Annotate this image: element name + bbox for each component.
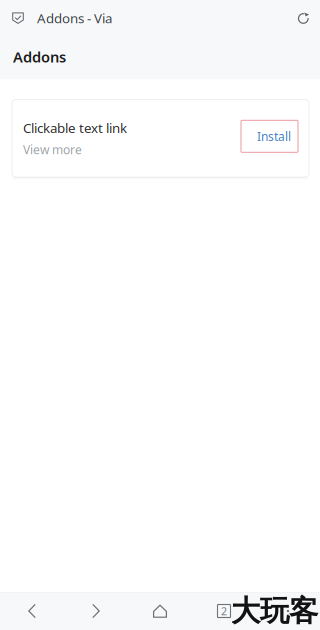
- button[interactable]: Reload: [285, 3, 320, 33]
- staticText: Addons: [13, 47, 66, 66]
- staticText: 大玩客: [231, 593, 318, 629]
- button[interactable]: Home: [128, 592, 192, 630]
- button[interactable]: Back: [0, 592, 64, 630]
- button[interactable]: Forward: [64, 592, 128, 630]
- staticText: Addons - Via: [37, 9, 112, 27]
- staticText: 2: [221, 604, 227, 618]
- button[interactable]: Install: [241, 120, 298, 156]
- staticText: Clickable text link: [23, 119, 127, 137]
- staticText: View more: [23, 142, 82, 158]
- staticText: Install: [257, 128, 291, 144]
- button[interactable]: Site information: [0, 3, 37, 33]
- button[interactable]: Tabs, 2 open: [192, 592, 256, 630]
- button[interactable]: Menu: [256, 592, 320, 630]
